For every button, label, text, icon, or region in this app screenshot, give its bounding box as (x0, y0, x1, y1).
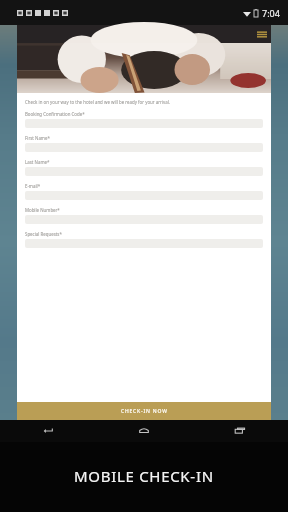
staticText: Last Name* (25, 159, 50, 165)
button[interactable]: Back (0, 420, 96, 442)
button[interactable]: CHECK-IN NOW (17, 402, 271, 420)
button[interactable]: Recent apps (192, 420, 288, 442)
staticText: Check in on your way to the hotel and we… (25, 99, 170, 105)
staticText: First Name* (25, 135, 50, 141)
staticText: E-mail* (25, 183, 41, 189)
button[interactable]: Open navigation menu (253, 25, 271, 43)
staticText: MOBILE CHECK-IN (74, 466, 214, 486)
staticText: CHECK-IN NOW (121, 408, 168, 415)
staticText: Special Requests* (25, 231, 62, 237)
button[interactable]: Home (96, 420, 192, 442)
staticText: 7:04 (262, 7, 280, 19)
staticText: Booking Confirmation Code* (25, 111, 85, 117)
staticText: Mobile Number* (25, 207, 60, 213)
